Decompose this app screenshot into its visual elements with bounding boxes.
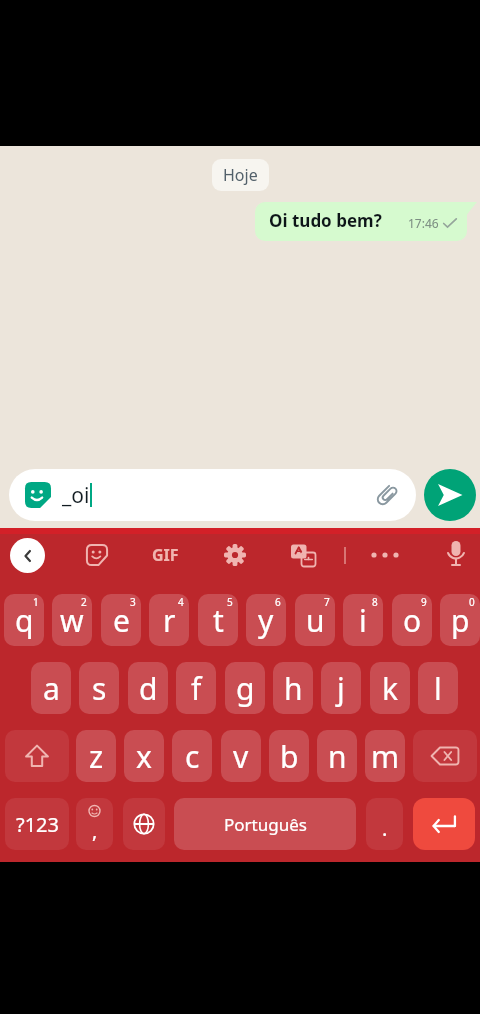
staticText: , [92, 817, 98, 844]
button[interactable]: m [365, 730, 405, 782]
button[interactable]: q [4, 594, 44, 646]
button[interactable] [123, 798, 165, 850]
button[interactable] [424, 469, 476, 521]
staticText: v [233, 736, 249, 777]
button[interactable]: _oi [9, 469, 416, 521]
button[interactable]: t [198, 594, 238, 646]
button[interactable]: Oi tudo bem? [255, 202, 467, 241]
button[interactable]: e [101, 594, 141, 646]
staticText: c [185, 736, 200, 777]
button[interactable]: j [321, 662, 361, 714]
button[interactable]: z [76, 730, 116, 782]
button[interactable]: r [149, 594, 189, 646]
staticText: z [89, 736, 104, 777]
button[interactable]: . [366, 798, 403, 850]
staticText: i [359, 600, 367, 641]
button[interactable] [444, 539, 468, 571]
button[interactable]: Português [174, 798, 356, 850]
staticText: _oi [62, 481, 90, 510]
staticText: 4 [178, 595, 184, 609]
staticText: a [43, 668, 60, 709]
staticText: Hoje [223, 164, 258, 186]
staticText: . [382, 815, 388, 842]
staticText: g [236, 668, 255, 709]
staticText: j [337, 668, 345, 709]
button[interactable]: u [295, 594, 335, 646]
staticText: 6 [275, 595, 281, 609]
button[interactable]: s [79, 662, 119, 714]
button[interactable]: v [221, 730, 261, 782]
staticText: f [191, 668, 202, 709]
staticText: 7 [324, 595, 330, 609]
staticText: d [139, 668, 158, 709]
button[interactable]: p [440, 594, 480, 646]
staticText: n [328, 736, 347, 777]
button[interactable] [85, 543, 109, 567]
button[interactable]: ?123 [5, 798, 69, 850]
staticText: o [403, 600, 422, 641]
staticText: 1 [33, 595, 39, 609]
button[interactable]: n [317, 730, 357, 782]
button[interactable]: y [246, 594, 286, 646]
button[interactable]: , [76, 798, 113, 850]
button[interactable]: f [176, 662, 216, 714]
button[interactable]: b [269, 730, 309, 782]
staticText: q [15, 600, 34, 641]
button[interactable]: Hoje [212, 159, 269, 191]
staticText: 8 [372, 595, 378, 609]
staticText: 3 [130, 595, 136, 609]
button[interactable]: g [225, 662, 265, 714]
staticText: Português [224, 813, 307, 836]
staticText: 2 [81, 595, 87, 609]
staticText: w [60, 600, 84, 641]
button[interactable] [291, 543, 316, 568]
staticText: 0 [469, 595, 475, 609]
button[interactable] [223, 543, 247, 567]
button[interactable]: a [31, 662, 71, 714]
button[interactable] [413, 730, 477, 782]
staticText: r [163, 600, 176, 641]
staticText: ?123 [16, 811, 59, 838]
button[interactable]: GIF [142, 542, 188, 568]
button[interactable]: k [370, 662, 410, 714]
staticText: y [258, 600, 274, 641]
button[interactable]: c [172, 730, 212, 782]
button[interactable]: i [343, 594, 383, 646]
staticText: h [284, 668, 303, 709]
staticText: e [113, 600, 130, 641]
staticText: l [434, 668, 442, 709]
button[interactable] [413, 798, 475, 850]
staticText: s [92, 668, 107, 709]
staticText: x [136, 736, 152, 777]
button[interactable]: x [124, 730, 164, 782]
button[interactable]: h [273, 662, 313, 714]
staticText: 5 [227, 595, 233, 609]
staticText: GIF [152, 544, 179, 566]
button[interactable]: w [52, 594, 92, 646]
button[interactable]: o [392, 594, 432, 646]
staticText: 17:46 [408, 215, 439, 231]
staticText: m [371, 736, 400, 777]
staticText: p [451, 600, 470, 641]
staticText: b [280, 736, 299, 777]
staticText: k [382, 668, 399, 709]
staticText: t [213, 600, 224, 641]
staticText: 9 [421, 595, 427, 609]
button[interactable]: l [418, 662, 458, 714]
button[interactable]: d [128, 662, 168, 714]
button[interactable] [5, 730, 69, 782]
button[interactable] [10, 538, 45, 573]
button[interactable] [370, 543, 400, 567]
staticText: Oi tudo bem? [269, 209, 382, 232]
staticText: u [306, 600, 325, 641]
